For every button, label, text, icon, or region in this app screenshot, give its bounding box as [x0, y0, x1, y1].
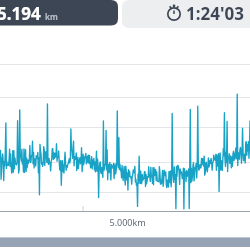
- button[interactable]: Scroll bar: [0, 237, 250, 250]
- button[interactable]: Distance 5.194 km: [0, 0, 118, 26]
- button[interactable]: Elapsed time 1:24'03: [122, 0, 250, 28]
